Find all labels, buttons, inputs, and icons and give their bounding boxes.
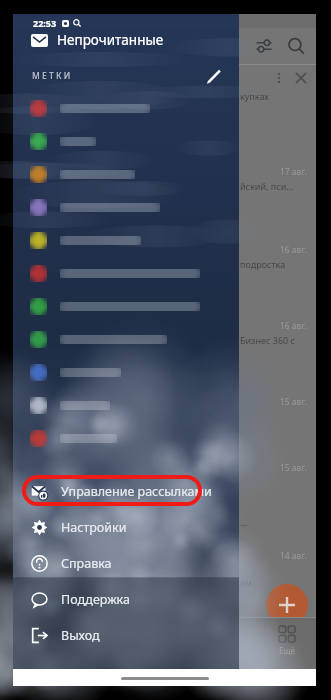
button[interactable]: Справка bbox=[13, 545, 239, 581]
staticText: Бизнес 360 с bbox=[240, 334, 295, 346]
button[interactable]: Search bbox=[280, 30, 312, 62]
button[interactable] bbox=[13, 389, 239, 422]
staticText: 15 авг. bbox=[13, 462, 307, 474]
button[interactable] bbox=[13, 224, 239, 257]
button[interactable]: Edit labels bbox=[197, 61, 227, 91]
staticText: 16 авг. bbox=[13, 320, 307, 332]
button[interactable] bbox=[13, 158, 239, 191]
button[interactable]: Compose bbox=[266, 584, 308, 626]
button[interactable] bbox=[13, 257, 239, 290]
staticText: 15 авг. bbox=[13, 396, 307, 408]
button[interactable] bbox=[13, 422, 239, 455]
staticText: Непрочитанные bbox=[57, 31, 164, 49]
staticText: Выход bbox=[61, 627, 100, 644]
button[interactable]: Filter bbox=[248, 30, 280, 62]
button[interactable] bbox=[13, 290, 239, 323]
button[interactable] bbox=[13, 125, 239, 158]
staticText: купках bbox=[240, 90, 269, 102]
button[interactable] bbox=[13, 356, 239, 389]
button[interactable]: More options bbox=[269, 68, 289, 88]
button[interactable] bbox=[13, 323, 239, 356]
staticText: 14 авг. bbox=[13, 550, 307, 562]
button[interactable]: Управление рассылками bbox=[13, 473, 239, 509]
staticText: Справка bbox=[61, 555, 112, 572]
button[interactable]: Ещё bbox=[258, 626, 316, 656]
staticText: подростка bbox=[240, 258, 286, 270]
staticText: М Е Т К И bbox=[32, 70, 71, 82]
staticText: йский, пси… bbox=[240, 180, 294, 192]
staticText: Поддержка bbox=[61, 591, 130, 608]
button[interactable]: Close bbox=[289, 66, 313, 90]
staticText: 17 авг. bbox=[13, 166, 307, 178]
staticText: Управление рассылками bbox=[61, 483, 212, 500]
staticText: 22:53 bbox=[33, 17, 57, 29]
button[interactable]: Выход bbox=[13, 617, 239, 653]
button[interactable] bbox=[13, 92, 239, 125]
button[interactable]: Настройки bbox=[13, 509, 239, 545]
button[interactable] bbox=[13, 191, 239, 224]
staticText: … bbox=[240, 516, 248, 528]
staticText: Настройки bbox=[61, 519, 127, 536]
staticText: 16 авг. bbox=[13, 244, 307, 256]
staticText: ам bbox=[240, 576, 252, 588]
button[interactable]: Поддержка bbox=[13, 581, 239, 617]
staticText: Ещё bbox=[279, 645, 296, 656]
